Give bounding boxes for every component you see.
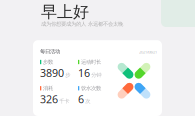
staticText: 成为你想要成为的人 永远都不会太晚 <box>41 21 123 27</box>
staticText: 16 <box>78 66 90 80</box>
staticText: 千卡 <box>59 98 69 105</box>
staticText: 3890 <box>40 66 64 80</box>
staticText: 早上好 <box>41 2 89 22</box>
staticText: 饮水次数 <box>81 85 101 92</box>
staticText: 消耗 <box>43 85 53 92</box>
staticText: 步数 <box>43 59 53 65</box>
staticText: 6 <box>78 92 84 106</box>
staticText: 次 <box>85 98 90 105</box>
staticText: 每日活动 <box>40 48 60 55</box>
staticText: 326 <box>40 92 58 106</box>
staticText: 步 <box>65 72 70 78</box>
staticText: 分钟 <box>91 72 101 78</box>
staticText: 运动时长 <box>81 59 101 65</box>
staticText: 2021/08/21 <box>139 49 157 55</box>
